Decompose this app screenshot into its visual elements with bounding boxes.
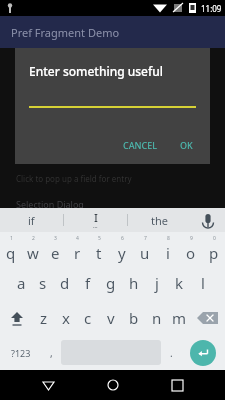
staticText: ••• xyxy=(93,225,98,230)
staticText: t xyxy=(96,243,102,263)
button[interactable]: c xyxy=(77,300,99,335)
button[interactable]: 0 xyxy=(202,232,225,266)
staticText: 7 xyxy=(144,235,147,242)
button[interactable]: 3 xyxy=(44,232,66,266)
button[interactable]: Voice input xyxy=(191,208,225,232)
button[interactable]: the xyxy=(128,208,191,232)
staticText: the xyxy=(151,213,168,228)
button[interactable]: s xyxy=(32,266,54,300)
staticText: o xyxy=(186,243,196,263)
staticText: . xyxy=(170,346,173,360)
staticText: e xyxy=(51,243,60,263)
staticText: q xyxy=(6,243,16,263)
staticText: 2 xyxy=(32,235,35,242)
button[interactable]: Recents xyxy=(160,370,194,400)
staticText: h xyxy=(129,273,139,293)
staticText: I xyxy=(94,210,98,225)
button[interactable]: b xyxy=(122,300,145,335)
button[interactable]: g xyxy=(99,266,122,300)
button[interactable]: k xyxy=(168,266,191,300)
button[interactable]: 5 xyxy=(88,232,110,266)
button[interactable]: m xyxy=(168,300,191,335)
staticText: 11:09 xyxy=(201,3,222,14)
staticText: g xyxy=(106,273,116,293)
button[interactable]: a xyxy=(10,266,32,300)
button[interactable]: Enter xyxy=(181,335,225,370)
staticText: d xyxy=(60,273,70,293)
staticText: CANCEL xyxy=(123,139,158,151)
button[interactable]: h xyxy=(122,266,145,300)
staticText: 6 xyxy=(121,235,124,242)
staticText: b xyxy=(129,308,139,328)
button[interactable]: x xyxy=(55,300,77,335)
staticText: 0 xyxy=(213,235,216,242)
button[interactable]: l xyxy=(191,266,214,300)
staticText: s xyxy=(39,273,47,293)
staticText: 1 xyxy=(10,235,13,242)
staticText: Pref Fragment Demo xyxy=(11,25,120,40)
button[interactable]: I xyxy=(64,208,127,232)
button[interactable]: Back xyxy=(31,370,65,400)
button[interactable]: 7 xyxy=(133,232,156,266)
button[interactable]: if xyxy=(0,208,63,232)
staticText: r xyxy=(74,243,81,263)
button[interactable]: CANCEL xyxy=(116,134,165,156)
button[interactable]: , xyxy=(41,335,61,370)
button[interactable]: 6 xyxy=(110,232,133,266)
staticText: v xyxy=(107,308,115,328)
button[interactable]: z xyxy=(33,300,55,335)
staticText: if xyxy=(28,213,35,228)
staticText: 9 xyxy=(190,235,193,242)
staticText: n xyxy=(152,308,162,328)
staticText: Selection Dialog xyxy=(16,198,84,208)
button[interactable]: v xyxy=(99,300,122,335)
staticText: u xyxy=(140,243,150,263)
staticText: 8 xyxy=(167,235,170,242)
button[interactable]: n xyxy=(145,300,168,335)
staticText: f xyxy=(85,273,91,293)
staticText: 5 xyxy=(98,235,101,242)
button[interactable]: 8 xyxy=(156,232,179,266)
button[interactable]: 1 xyxy=(0,232,22,266)
button[interactable]: 4 xyxy=(66,232,88,266)
staticText: x xyxy=(62,308,70,328)
staticText: 4 xyxy=(76,235,79,242)
staticText: z xyxy=(40,308,48,328)
staticText: y xyxy=(118,243,126,263)
staticText: Click to pop up a field for entry xyxy=(16,173,132,184)
staticText: i xyxy=(166,243,170,263)
staticText: p xyxy=(209,243,219,263)
button[interactable]: Home xyxy=(96,370,130,400)
button[interactable]: OK xyxy=(173,134,200,156)
button[interactable]: d xyxy=(54,266,76,300)
staticText: m xyxy=(172,308,187,328)
staticText: ?123 xyxy=(11,347,31,359)
button[interactable]: 2 xyxy=(22,232,44,266)
staticText: , xyxy=(50,346,53,360)
staticText: j xyxy=(155,273,159,293)
button[interactable]: 9 xyxy=(179,232,202,266)
button[interactable]: . xyxy=(161,335,181,370)
staticText: k xyxy=(175,273,184,293)
staticText: OK xyxy=(180,139,193,151)
staticText: 3 xyxy=(54,235,57,242)
button[interactable]: Backspace xyxy=(191,300,225,335)
staticText: Enter something useful xyxy=(29,63,164,79)
staticText: l xyxy=(201,273,205,293)
button[interactable]: j xyxy=(145,266,168,300)
staticText: w xyxy=(27,243,39,263)
staticText: a xyxy=(17,273,26,293)
staticText: c xyxy=(84,308,92,328)
button[interactable]: Shift xyxy=(0,300,33,335)
button[interactable]: f xyxy=(76,266,99,300)
button[interactable]: ?123 xyxy=(0,335,41,370)
